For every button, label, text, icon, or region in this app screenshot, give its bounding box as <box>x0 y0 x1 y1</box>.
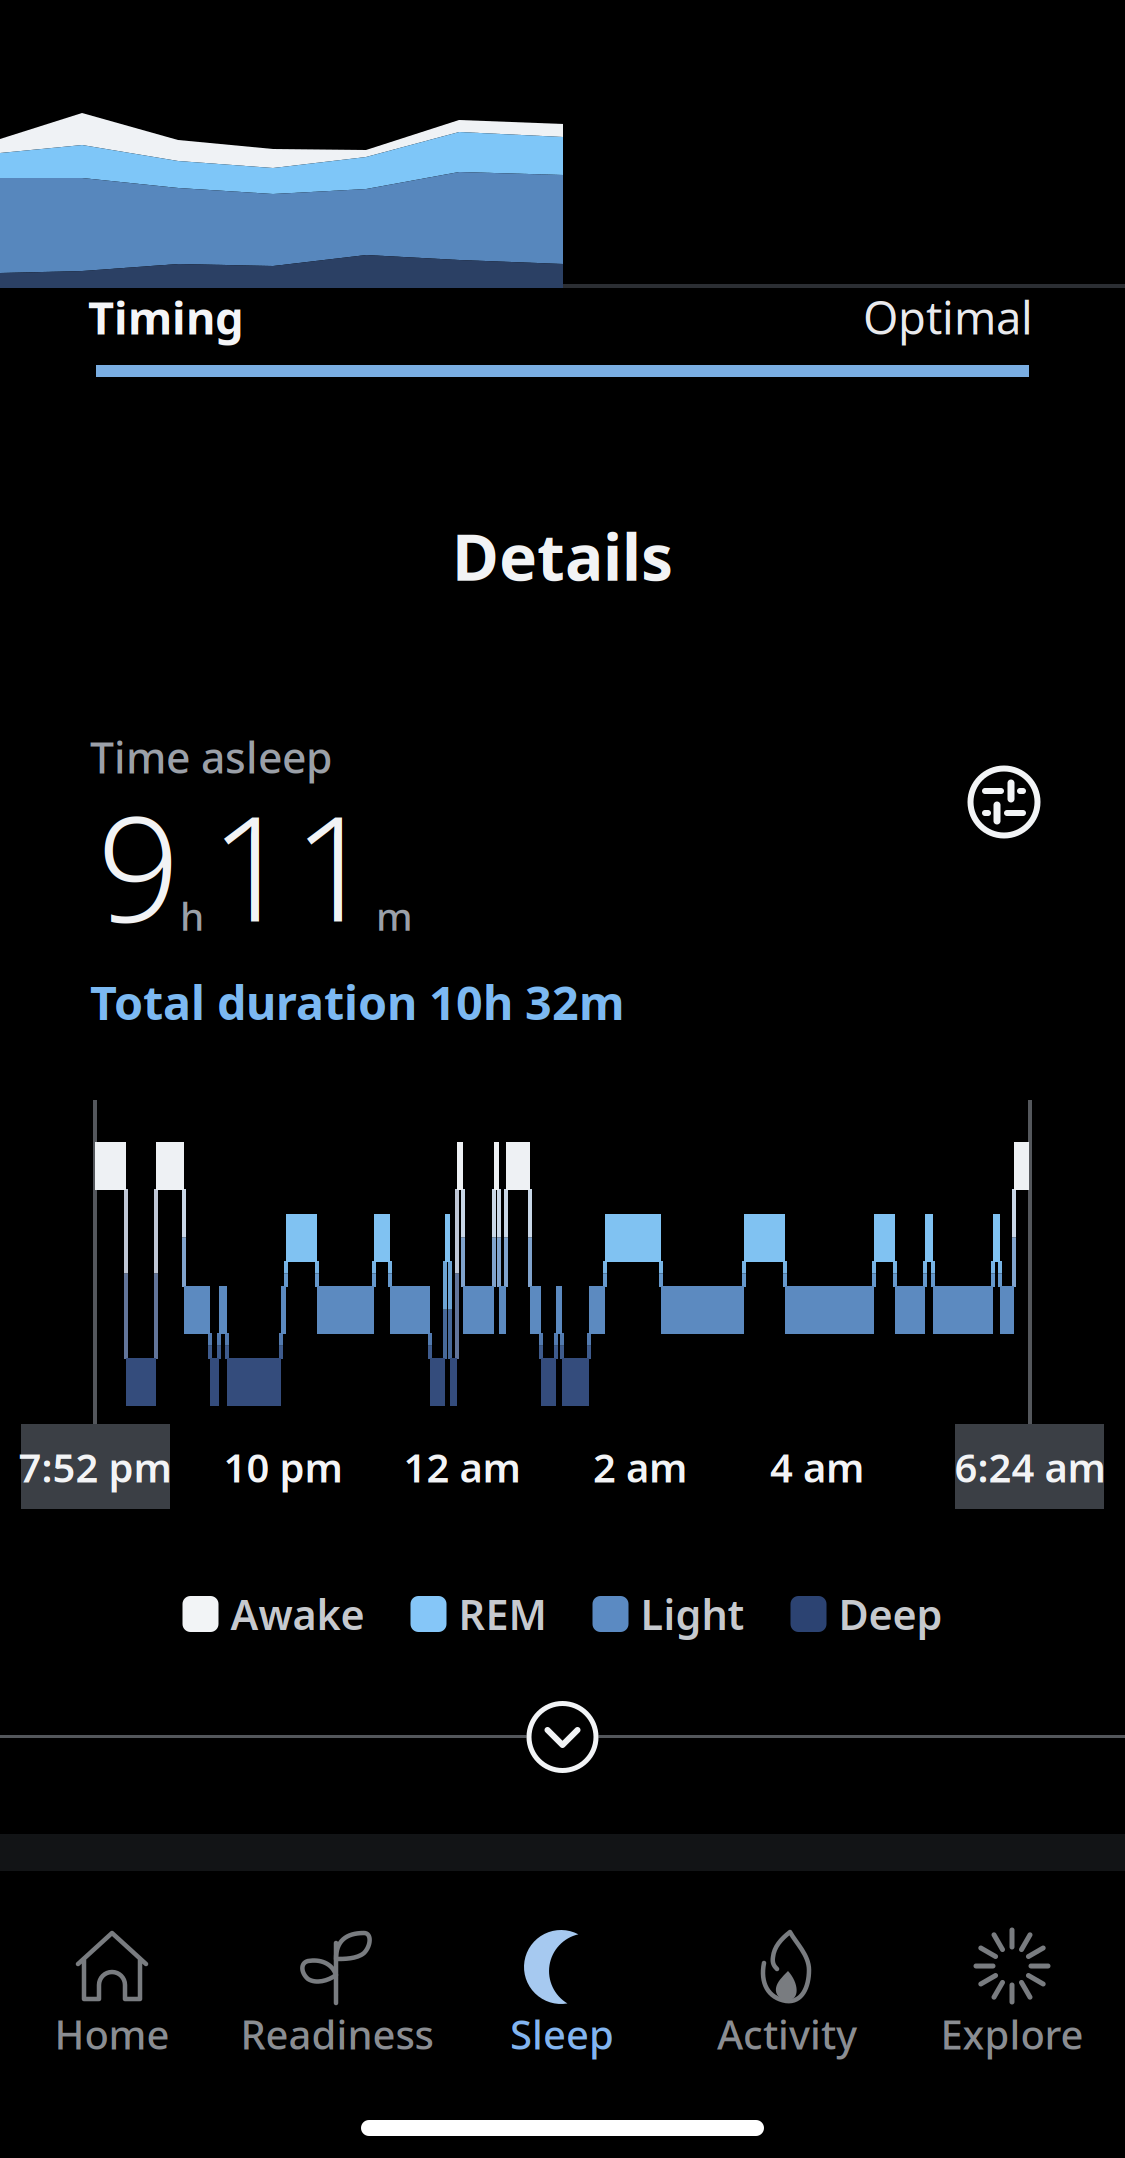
staticText: m <box>376 890 413 941</box>
staticText: Light <box>640 1587 744 1641</box>
button[interactable]: Explore <box>927 1913 1097 2053</box>
staticText: Details <box>452 513 673 598</box>
staticText: Total duration 10h 32m <box>90 971 625 1033</box>
button[interactable]: Sleep <box>477 1913 647 2053</box>
staticText: Sleep <box>510 2007 614 2060</box>
staticText: 11 <box>210 768 376 961</box>
staticText: 10 pm <box>223 1440 342 1493</box>
staticText: 7:52 pm <box>18 1440 171 1493</box>
button[interactable]: Adjust sleep chart <box>949 747 1059 857</box>
staticText: Explore <box>940 2007 1083 2060</box>
staticText: 9 <box>97 768 180 961</box>
staticText: 4 am <box>770 1440 864 1493</box>
button[interactable]: Readiness <box>252 1913 422 2053</box>
staticText: Readiness <box>240 2007 433 2060</box>
button[interactable]: Collapse details <box>517 1692 607 1782</box>
staticText: REM <box>458 1587 546 1641</box>
button[interactable]: Home <box>27 1913 197 2053</box>
staticText: 12 am <box>403 1440 520 1493</box>
staticText: h <box>180 890 204 941</box>
staticText: 2 am <box>593 1440 687 1493</box>
staticText: Home <box>54 2007 169 2060</box>
button[interactable]: Activity <box>702 1913 872 2053</box>
staticText: Optimal <box>863 287 1033 347</box>
staticText: Awake <box>230 1587 364 1641</box>
staticText: Timing <box>88 287 244 347</box>
staticText: Time asleep <box>90 729 332 785</box>
staticText: Deep <box>838 1587 942 1641</box>
staticText: 6:24 am <box>954 1440 1105 1493</box>
staticText: Activity <box>717 2007 857 2060</box>
